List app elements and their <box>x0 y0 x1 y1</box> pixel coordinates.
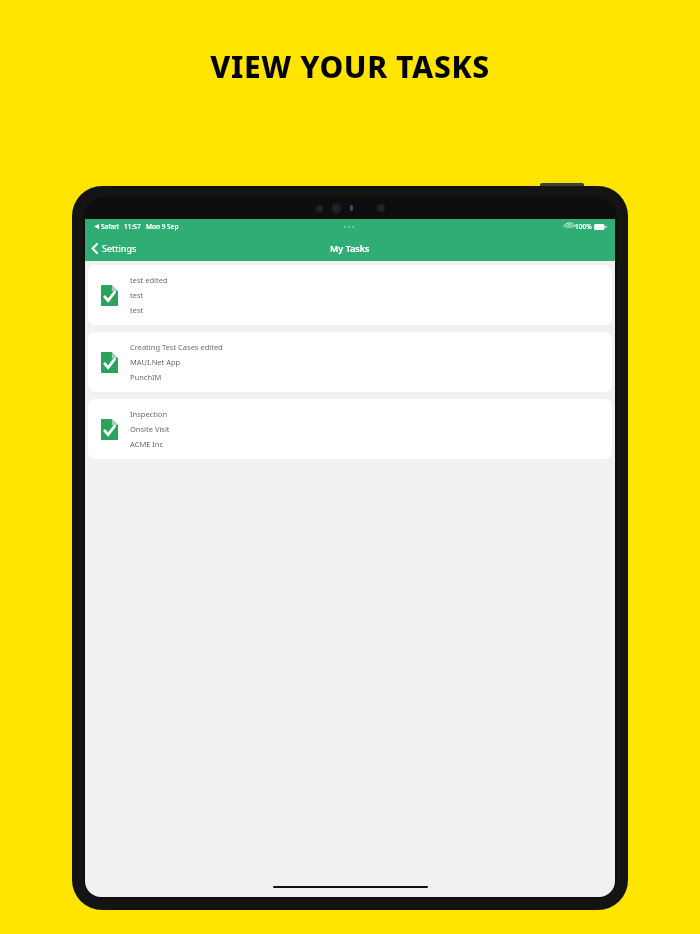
button[interactable]: Task document <box>88 332 612 392</box>
staticText: VIEW YOUR TASKS <box>210 46 490 87</box>
other: Task document <box>101 352 118 373</box>
staticText: PunchIM <box>130 372 162 382</box>
staticText: Onsite Visit <box>130 424 170 434</box>
staticText: 11:57 <box>124 222 141 231</box>
staticText: Mon 9 Sep <box>146 222 179 231</box>
staticText: MAUI.Net App <box>130 357 181 367</box>
staticText: ACME Inc <box>130 439 164 449</box>
other: Task document <box>101 285 118 306</box>
button[interactable]: Settings <box>85 238 145 258</box>
staticText: Settings <box>102 242 137 254</box>
staticText: test <box>130 305 144 315</box>
staticText: My Tasks <box>330 242 370 254</box>
staticText: 100% <box>575 222 592 231</box>
staticText: Inspection <box>130 409 168 419</box>
staticText: test <box>130 290 144 300</box>
staticText: test edited <box>130 275 168 285</box>
other: Task document <box>101 419 118 440</box>
staticText: Safari <box>101 222 119 231</box>
button[interactable]: Task document <box>88 399 612 459</box>
button[interactable]: Task document <box>88 265 612 325</box>
staticText: Creating Test Cases edited <box>130 342 223 352</box>
